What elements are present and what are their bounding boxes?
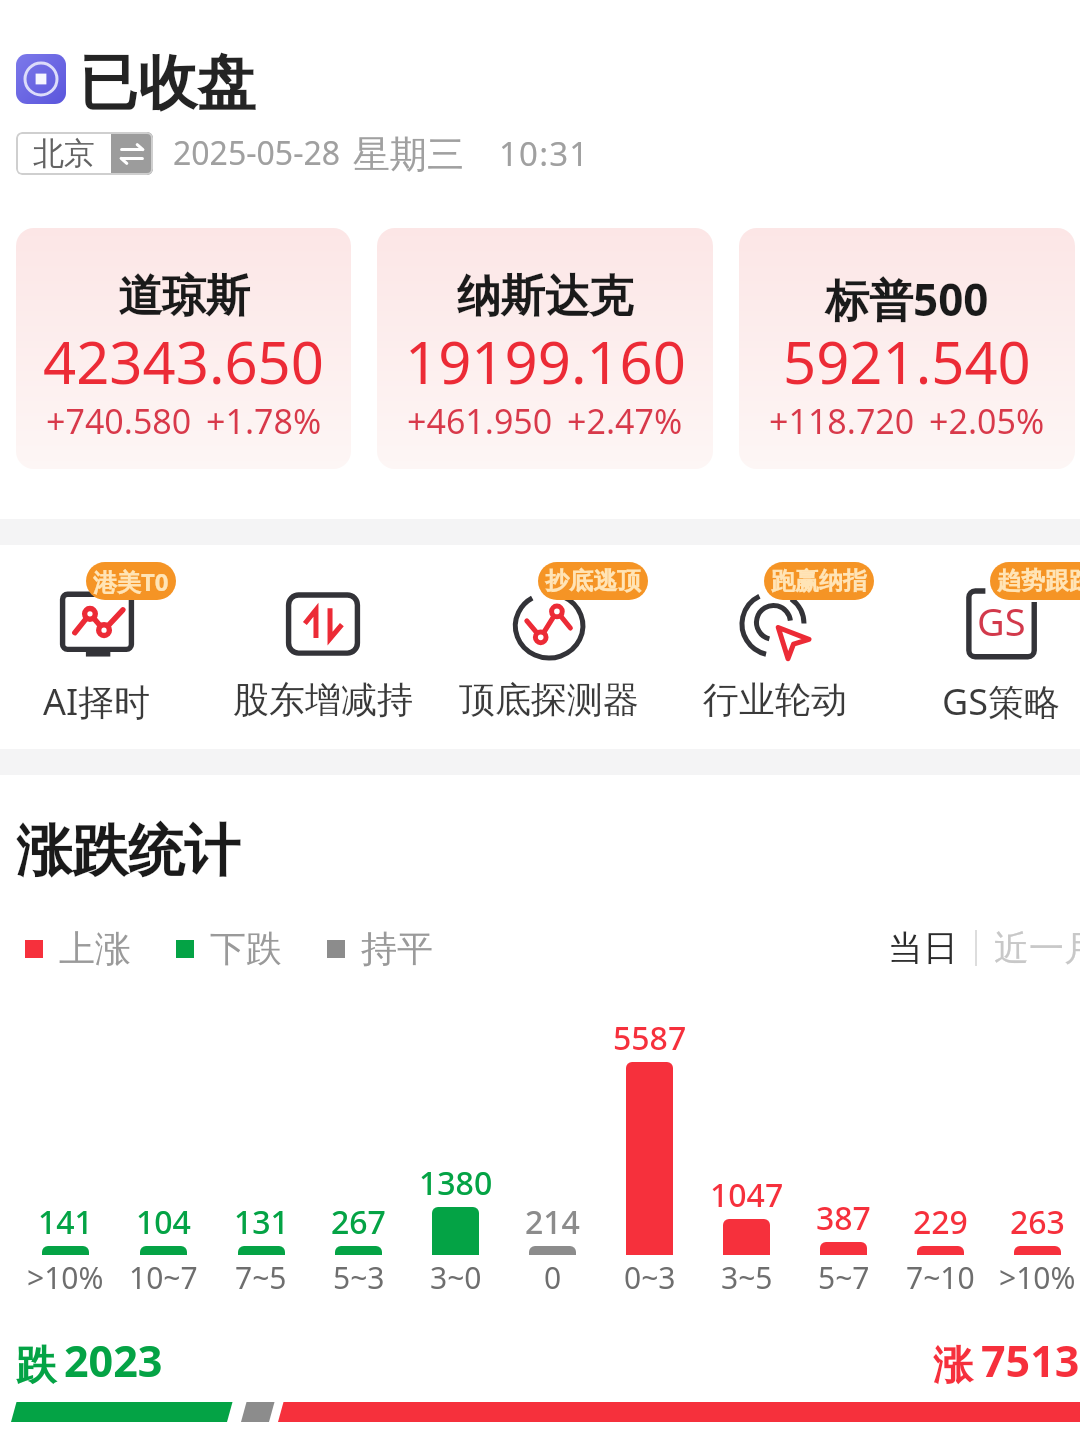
staticText: 股东增减持 [233, 677, 413, 722]
staticText: 131 [234, 1200, 289, 1244]
staticText: 3~0 [430, 1257, 482, 1298]
staticText: 3~5 [721, 1257, 773, 1298]
staticText: 星期三 [353, 131, 464, 175]
staticText: 10~7 [129, 1257, 198, 1298]
staticText: 标普500 [825, 269, 989, 329]
staticText: GS策略 [942, 677, 1060, 726]
staticText: 行业轮动 [703, 677, 847, 722]
staticText: 持平 [361, 926, 433, 971]
staticText: GS [977, 595, 1026, 647]
staticText: 跑赢纳指 [771, 566, 867, 596]
button[interactable]: 涨 [933, 1331, 1080, 1390]
button[interactable]: 跌 [16, 1331, 163, 1390]
staticText: 5~7 [818, 1257, 870, 1298]
staticText: 趋势跟踪 [997, 566, 1080, 596]
button[interactable]: 港美T0 [0, 545, 210, 749]
staticText: 顶底探测器 [459, 677, 639, 722]
staticText: >10% [27, 1257, 104, 1298]
staticText: 141 [38, 1200, 93, 1244]
button[interactable]: 当日 [888, 926, 958, 970]
staticText: 387 [816, 1196, 871, 1240]
staticText: 2025-05-28 [173, 131, 341, 175]
staticText: 已收盘 [79, 46, 256, 112]
button[interactable]: 上涨 [25, 926, 131, 971]
staticText: +1.78% [206, 398, 322, 444]
staticText: 抄底逃顶 [545, 566, 641, 596]
button[interactable]: 北京 [16, 132, 153, 175]
staticText: 5587 [613, 1016, 687, 1060]
button[interactable]: GS [888, 545, 1080, 749]
staticText: >10% [999, 1257, 1076, 1298]
staticText: 42343.650 [43, 322, 324, 401]
staticText: +740.580 [46, 398, 192, 444]
button[interactable]: 下跌 [176, 926, 282, 971]
staticText: 0~3 [624, 1257, 676, 1298]
staticText: 263 [1010, 1200, 1065, 1244]
button[interactable]: 标普500 [739, 228, 1075, 469]
staticText: 港美T0 [93, 565, 169, 598]
staticText: 当日 [888, 926, 958, 970]
staticText: AI择时 [43, 677, 151, 726]
button[interactable]: 抄底逃顶 [436, 545, 662, 749]
staticText: +2.05% [929, 398, 1045, 444]
staticText: 1047 [710, 1173, 784, 1217]
staticText: 跌 [16, 1340, 56, 1390]
staticText: 10:31 [499, 131, 590, 175]
staticText: 1380 [419, 1161, 493, 1205]
button[interactable]: Market status [16, 54, 66, 104]
button[interactable]: 跑赢纳指 [662, 545, 888, 749]
staticText: 5921.540 [783, 322, 1031, 401]
staticText: 7~5 [235, 1257, 287, 1298]
staticText: 上涨 [59, 926, 131, 971]
button[interactable]: 持平 [327, 926, 433, 971]
staticText: 0 [544, 1257, 562, 1298]
button[interactable]: 股东增减持 [210, 545, 436, 749]
staticText: 7513 [981, 1331, 1080, 1390]
staticText: 近一月 [994, 926, 1080, 970]
staticText: 涨 [933, 1340, 973, 1390]
staticText: 19199.160 [405, 322, 686, 401]
staticText: 5~3 [333, 1257, 385, 1298]
staticText: +2.47% [567, 398, 683, 444]
staticText: 涨跌统计 [16, 816, 240, 887]
staticText: 下跌 [210, 926, 282, 971]
button[interactable]: 近一月 [994, 926, 1080, 970]
staticText: 214 [525, 1200, 580, 1244]
staticText: 229 [913, 1200, 968, 1244]
staticText: 104 [136, 1200, 191, 1244]
button[interactable]: 纳斯达克 [377, 228, 713, 469]
staticText: 267 [331, 1200, 386, 1244]
staticText: 7~10 [906, 1257, 975, 1298]
staticText: 北京 [33, 134, 95, 173]
staticText: +118.720 [769, 398, 915, 444]
staticText: 2023 [64, 1331, 163, 1390]
button[interactable]: 道琼斯 [16, 228, 351, 469]
staticText: +461.950 [407, 398, 553, 444]
staticText: 道琼斯 [118, 269, 250, 324]
staticText: 纳斯达克 [457, 269, 633, 324]
